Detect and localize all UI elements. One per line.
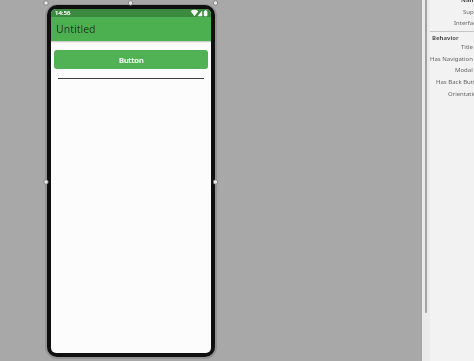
staticText: Supp bbox=[463, 8, 474, 16]
staticText: Name bbox=[461, 0, 474, 4]
staticText: Behavior bbox=[432, 34, 459, 42]
staticText: Orientation bbox=[448, 90, 474, 98]
staticText: 14:56 bbox=[55, 9, 71, 17]
staticText: Button bbox=[119, 55, 144, 65]
staticText: Untitled bbox=[56, 22, 96, 36]
button[interactable]: Untitled bbox=[51, 17, 211, 41]
staticText: Interface bbox=[454, 19, 474, 27]
staticText: Title bbox=[461, 43, 473, 51]
staticText: Has Back Button bbox=[436, 78, 474, 86]
button[interactable]: Button bbox=[54, 50, 208, 69]
staticText: Has Navigation Bar bbox=[430, 55, 474, 63]
staticText: Modal bbox=[455, 66, 473, 74]
